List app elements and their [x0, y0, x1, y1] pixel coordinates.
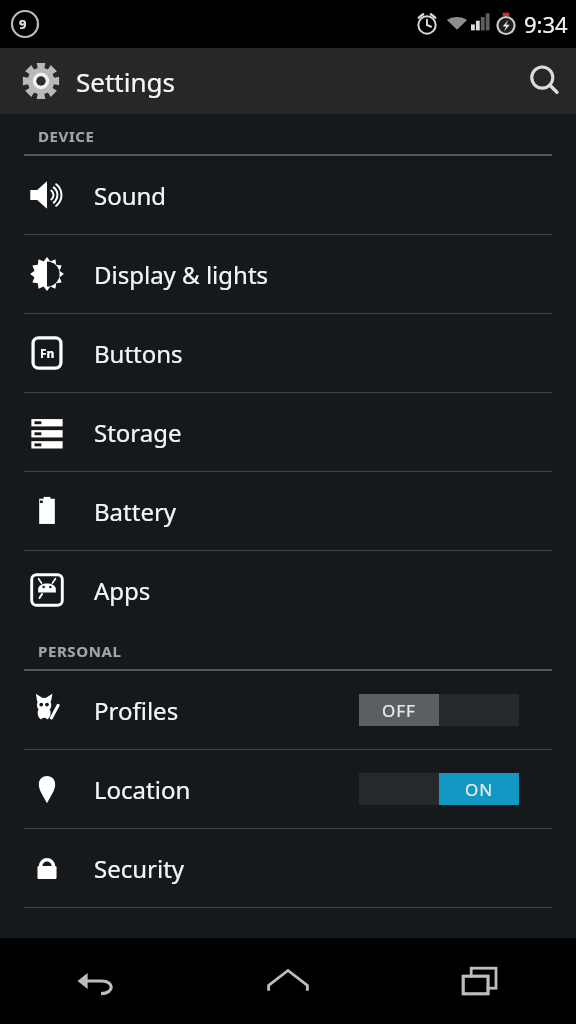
button[interactable]: Search	[514, 50, 576, 112]
staticText: Fn	[40, 345, 55, 361]
staticText: OFF	[382, 699, 416, 722]
staticText: Settings	[76, 64, 175, 99]
staticText: Profiles	[94, 694, 359, 727]
button[interactable]: Sound	[0, 156, 576, 234]
staticText: Security	[94, 852, 576, 885]
staticText: Apps	[94, 574, 576, 607]
button[interactable]: Profiles	[0, 671, 576, 749]
staticText: Battery	[94, 495, 576, 528]
button[interactable]: Display & lights	[0, 235, 576, 313]
button[interactable]: Recent apps	[384, 938, 576, 1024]
staticText: Storage	[94, 416, 576, 449]
button[interactable]: Battery	[0, 472, 576, 550]
staticText: 9	[19, 15, 27, 33]
button[interactable]: Back	[0, 938, 192, 1024]
button[interactable]: Apps	[0, 551, 576, 629]
button[interactable]: Security	[0, 829, 576, 907]
button[interactable]: ON	[359, 773, 519, 805]
staticText: ON	[465, 778, 494, 801]
button[interactable]: Fn	[0, 314, 576, 392]
button[interactable]: Home	[192, 938, 384, 1024]
staticText: Buttons	[94, 337, 576, 370]
staticText: 9:34	[524, 9, 568, 39]
button[interactable]: Storage	[0, 393, 576, 471]
staticText: PERSONAL	[38, 641, 122, 661]
button[interactable]: Location	[0, 750, 576, 828]
staticText: DEVICE	[38, 126, 95, 146]
staticText: Sound	[94, 179, 576, 212]
staticText: Display & lights	[94, 258, 576, 291]
staticText: Location	[94, 773, 359, 806]
button[interactable]: OFF	[359, 694, 519, 726]
